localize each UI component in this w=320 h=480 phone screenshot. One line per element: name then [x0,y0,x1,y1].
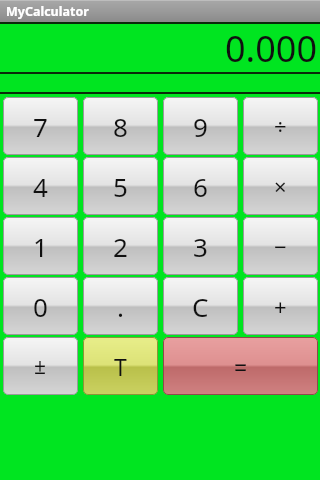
staticText: 7 [33,109,48,144]
staticText: 9 [193,109,208,144]
staticText: + [274,291,287,321]
button[interactable]: 6 [163,157,238,215]
button[interactable]: 2 [83,217,158,275]
staticText: − [274,231,287,261]
staticText: = [234,351,248,382]
staticText: 6 [193,169,208,204]
button[interactable]: Plus minus [3,337,78,395]
staticText: × [274,171,287,201]
button[interactable]: T [83,337,158,395]
button[interactable]: 0 [3,277,78,335]
staticText: ± [34,352,47,381]
button[interactable]: Divide [243,97,318,155]
staticText: . [117,289,124,324]
button[interactable]: Subtract [243,217,318,275]
staticText: 8 [113,109,128,144]
staticText: 2 [113,229,128,264]
staticText: 5 [113,169,128,204]
staticText: 3 [193,229,208,264]
button[interactable]: Add [243,277,318,335]
button[interactable]: Multiply [243,157,318,215]
staticText: 1 [33,229,48,264]
button[interactable]: 1 [3,217,78,275]
button[interactable]: 7 [3,97,78,155]
button[interactable]: 5 [83,157,158,215]
button[interactable]: Equals [163,337,318,395]
staticText: ÷ [274,111,287,141]
staticText: 0.000 [224,24,317,72]
button[interactable]: . [83,277,158,335]
button[interactable]: 8 [83,97,158,155]
staticText: C [192,289,209,324]
staticText: T [114,351,127,382]
button[interactable]: 9 [163,97,238,155]
staticText: 0 [33,289,48,324]
button[interactable]: 4 [3,157,78,215]
staticText: 4 [33,169,48,204]
staticText: MyCalculator [6,3,89,20]
button[interactable]: C [163,277,238,335]
button[interactable]: 3 [163,217,238,275]
